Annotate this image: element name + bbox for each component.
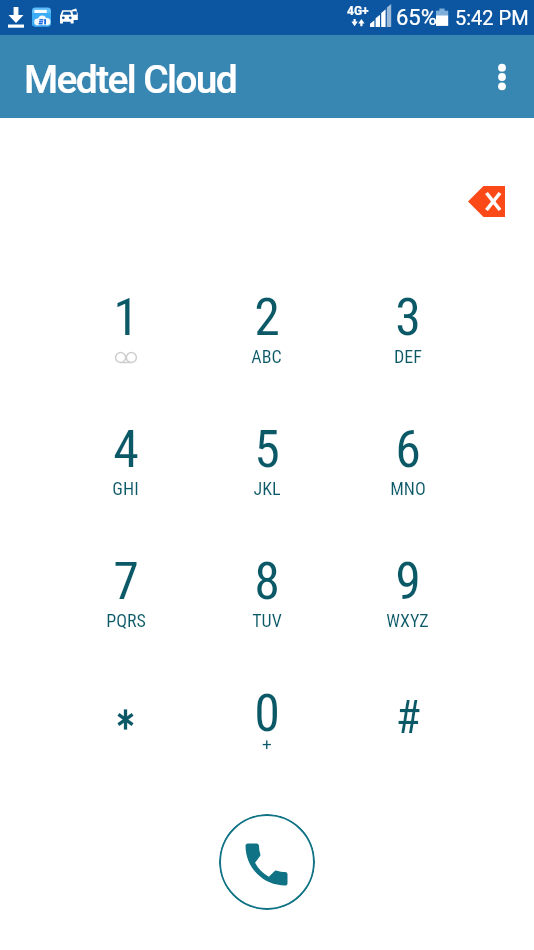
staticText: TUV xyxy=(252,610,282,631)
button[interactable]: More options xyxy=(478,35,534,118)
staticText: 0 xyxy=(254,683,280,744)
button[interactable]: 1 xyxy=(55,287,196,419)
staticText: 8 xyxy=(254,551,280,612)
button[interactable]: 9 xyxy=(337,551,478,683)
staticText: 6 xyxy=(395,419,421,480)
staticText: WXYZ xyxy=(386,610,429,631)
button[interactable]: 0 xyxy=(196,683,337,815)
staticText: 4 xyxy=(113,419,139,480)
staticText: 2 xyxy=(254,287,280,348)
staticText: PQRS xyxy=(106,610,146,631)
staticText: 1 xyxy=(113,287,139,348)
button[interactable]: 7 xyxy=(55,551,196,683)
staticText: 4G+ xyxy=(347,4,369,18)
button[interactable]: Backspace xyxy=(462,177,510,225)
staticText: 9 xyxy=(395,551,421,612)
button[interactable] xyxy=(55,683,196,815)
staticText: Medtel Cloud xyxy=(24,57,237,103)
staticText: DEF xyxy=(394,346,422,367)
button[interactable]: 8 xyxy=(196,551,337,683)
button[interactable]: 6 xyxy=(337,419,478,551)
button[interactable]: 4 xyxy=(55,419,196,551)
staticText: # xyxy=(395,690,421,744)
staticText: + xyxy=(262,734,272,754)
staticText: GHI xyxy=(112,478,139,499)
staticText: MNO xyxy=(390,478,426,499)
staticText: JKL xyxy=(253,478,281,499)
button[interactable]: 3 xyxy=(337,287,478,419)
button[interactable]: Call xyxy=(219,814,315,910)
staticText: 7 xyxy=(113,551,139,612)
button[interactable]: # xyxy=(337,683,478,815)
staticText: 65% xyxy=(396,5,437,31)
staticText: 3 xyxy=(395,287,421,348)
staticText: ABC xyxy=(251,346,282,367)
button[interactable]: 5 xyxy=(196,419,337,551)
staticText: 5 xyxy=(254,419,280,480)
staticText: 5:42 PM xyxy=(455,6,529,29)
button[interactable]: 2 xyxy=(196,287,337,419)
